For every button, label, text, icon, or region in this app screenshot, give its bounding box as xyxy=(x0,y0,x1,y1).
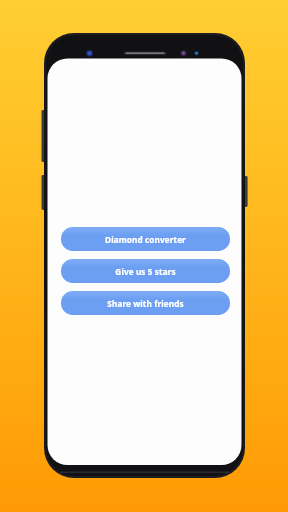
button[interactable]: Diamond converter xyxy=(61,227,230,251)
button[interactable]: Share with friends xyxy=(61,291,230,315)
staticText: Give us 5 stars xyxy=(115,266,176,277)
staticText: Share with friends xyxy=(107,298,184,309)
staticText: Diamond converter xyxy=(105,234,186,245)
button[interactable]: Give us 5 stars xyxy=(61,259,230,283)
